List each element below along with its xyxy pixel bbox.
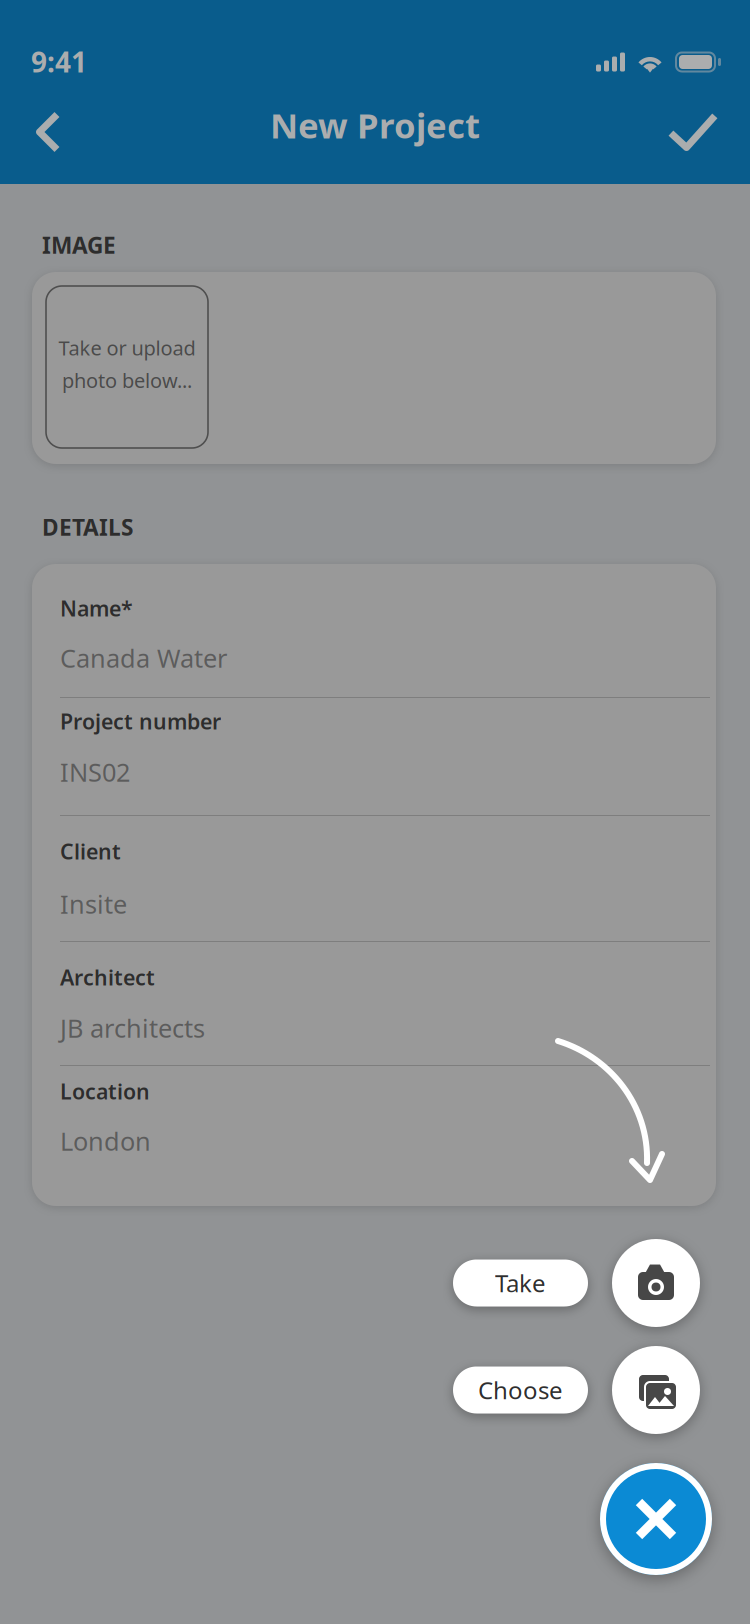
staticText: Take or upload — [58, 334, 195, 361]
staticText: Project number — [60, 707, 221, 735]
staticText: Client — [60, 837, 121, 865]
staticText: JB architects — [60, 1011, 205, 1045]
button[interactable]: Take photo — [612, 1239, 700, 1327]
staticText: INS02 — [60, 755, 130, 789]
button[interactable]: Take — [453, 1259, 588, 1306]
button[interactable]: Back — [4, 86, 90, 178]
button[interactable]: Choose photo — [612, 1346, 700, 1434]
staticText: Name* — [60, 594, 133, 622]
button[interactable]: Save project — [650, 86, 736, 178]
staticText: 9:41 — [31, 43, 87, 80]
staticText: IMAGE — [42, 230, 116, 260]
staticText: Take — [495, 1267, 546, 1299]
button[interactable]: Choose — [453, 1366, 588, 1413]
staticText: DETAILS — [42, 512, 133, 542]
staticText: Architect — [60, 963, 155, 991]
staticText: Insite — [60, 887, 127, 921]
button[interactable]: Close — [600, 1463, 712, 1575]
staticText: Canada Water — [60, 641, 227, 675]
staticText: New Project — [270, 102, 480, 148]
staticText: photo below... — [62, 367, 192, 394]
staticText: Choose — [478, 1374, 563, 1406]
staticText: Location — [60, 1077, 150, 1105]
staticText: London — [60, 1124, 151, 1158]
